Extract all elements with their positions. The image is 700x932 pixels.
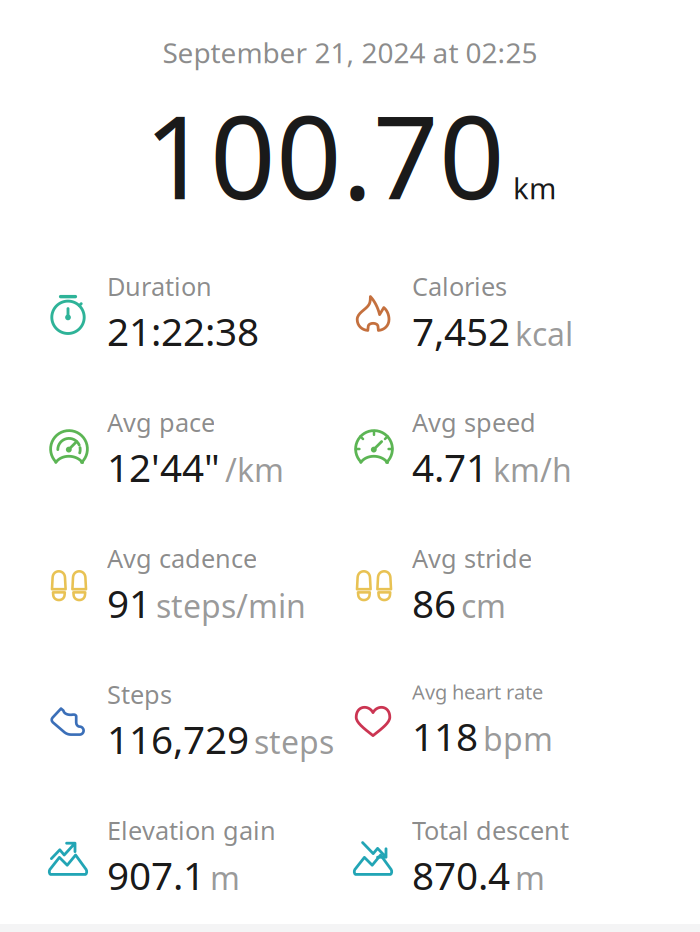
- staticText: m: [515, 856, 545, 899]
- staticText: Calories: [412, 269, 507, 303]
- staticText: 4.71: [412, 441, 488, 493]
- staticText: km: [513, 168, 556, 207]
- staticText: 21:22:38: [107, 305, 259, 357]
- staticText: km/h: [493, 448, 572, 491]
- staticText: Avg cadence: [107, 541, 257, 575]
- staticText: 91: [107, 577, 151, 629]
- staticText: m: [210, 856, 240, 899]
- staticText: bpm: [483, 717, 553, 760]
- staticText: 7,452: [412, 305, 510, 357]
- staticText: Duration: [107, 269, 212, 303]
- staticText: Steps: [107, 677, 172, 711]
- staticText: /km: [225, 448, 284, 491]
- staticText: 907.1: [107, 849, 205, 901]
- staticText: 100.70: [144, 79, 505, 231]
- staticText: Avg heart rate: [412, 678, 543, 705]
- staticText: kcal: [515, 312, 573, 355]
- staticText: steps/min: [156, 584, 306, 627]
- staticText: 12'44": [107, 441, 220, 493]
- staticText: steps: [254, 720, 334, 763]
- staticText: 86: [412, 577, 456, 629]
- staticText: September 21, 2024 at 02:25: [162, 34, 537, 71]
- staticText: 870.4: [412, 849, 510, 901]
- staticText: cm: [461, 584, 506, 627]
- staticText: Total descent: [412, 813, 569, 847]
- staticText: 118: [412, 710, 478, 762]
- staticText: 116,729: [107, 713, 249, 765]
- staticText: Avg speed: [412, 405, 536, 439]
- staticText: Avg pace: [107, 405, 215, 439]
- staticText: Elevation gain: [107, 813, 276, 847]
- staticText: Avg stride: [412, 541, 532, 575]
